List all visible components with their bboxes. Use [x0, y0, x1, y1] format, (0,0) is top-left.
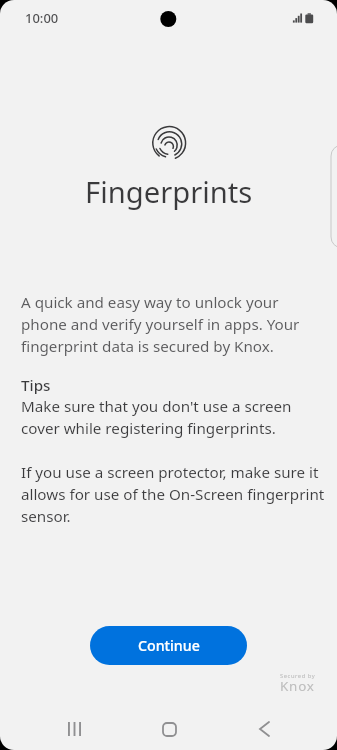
button[interactable]: Home [149, 718, 190, 740]
staticText: 10:00 [25, 9, 59, 27]
staticText: If you use a screen protector, make sure… [21, 462, 325, 527]
staticText: A quick and easy way to unlock your phon… [21, 292, 325, 357]
button[interactable]: Recent apps [54, 718, 95, 740]
button[interactable]: Back [244, 718, 285, 740]
button[interactable]: Continue [90, 626, 247, 665]
staticText: Fingerprints [85, 172, 253, 212]
staticText: Continue [138, 636, 200, 655]
staticText: Make sure that you don't use a screen co… [21, 396, 325, 439]
staticText: Tips [21, 375, 51, 396]
staticText: Secured by [280, 672, 316, 680]
staticText: Knox [280, 677, 315, 695]
